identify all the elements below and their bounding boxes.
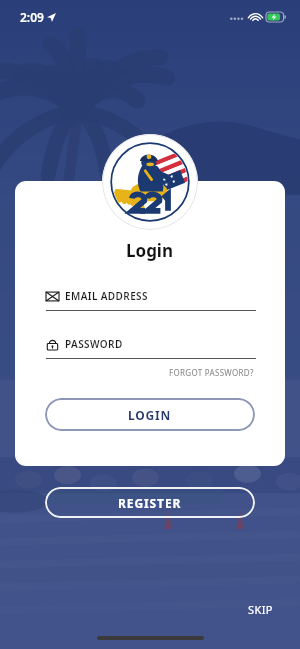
other: Unit 221 logo bbox=[102, 134, 198, 230]
staticText: PASSWORD bbox=[65, 337, 123, 351]
button[interactable]: LOGIN bbox=[45, 398, 255, 431]
button[interactable]: REGISTER bbox=[45, 487, 255, 518]
staticText: EMAIL ADDRESS bbox=[65, 289, 148, 303]
button[interactable]: FORGOT PASSWORD? bbox=[167, 365, 256, 380]
staticText: LOGIN bbox=[128, 407, 172, 423]
staticText: Login bbox=[126, 239, 174, 262]
staticText: SKIP bbox=[248, 602, 273, 617]
button[interactable]: SKIP bbox=[244, 598, 277, 621]
staticText: FORGOT PASSWORD? bbox=[169, 367, 254, 378]
staticText: 2:09 bbox=[20, 9, 44, 25]
staticText: REGISTER bbox=[118, 495, 182, 511]
